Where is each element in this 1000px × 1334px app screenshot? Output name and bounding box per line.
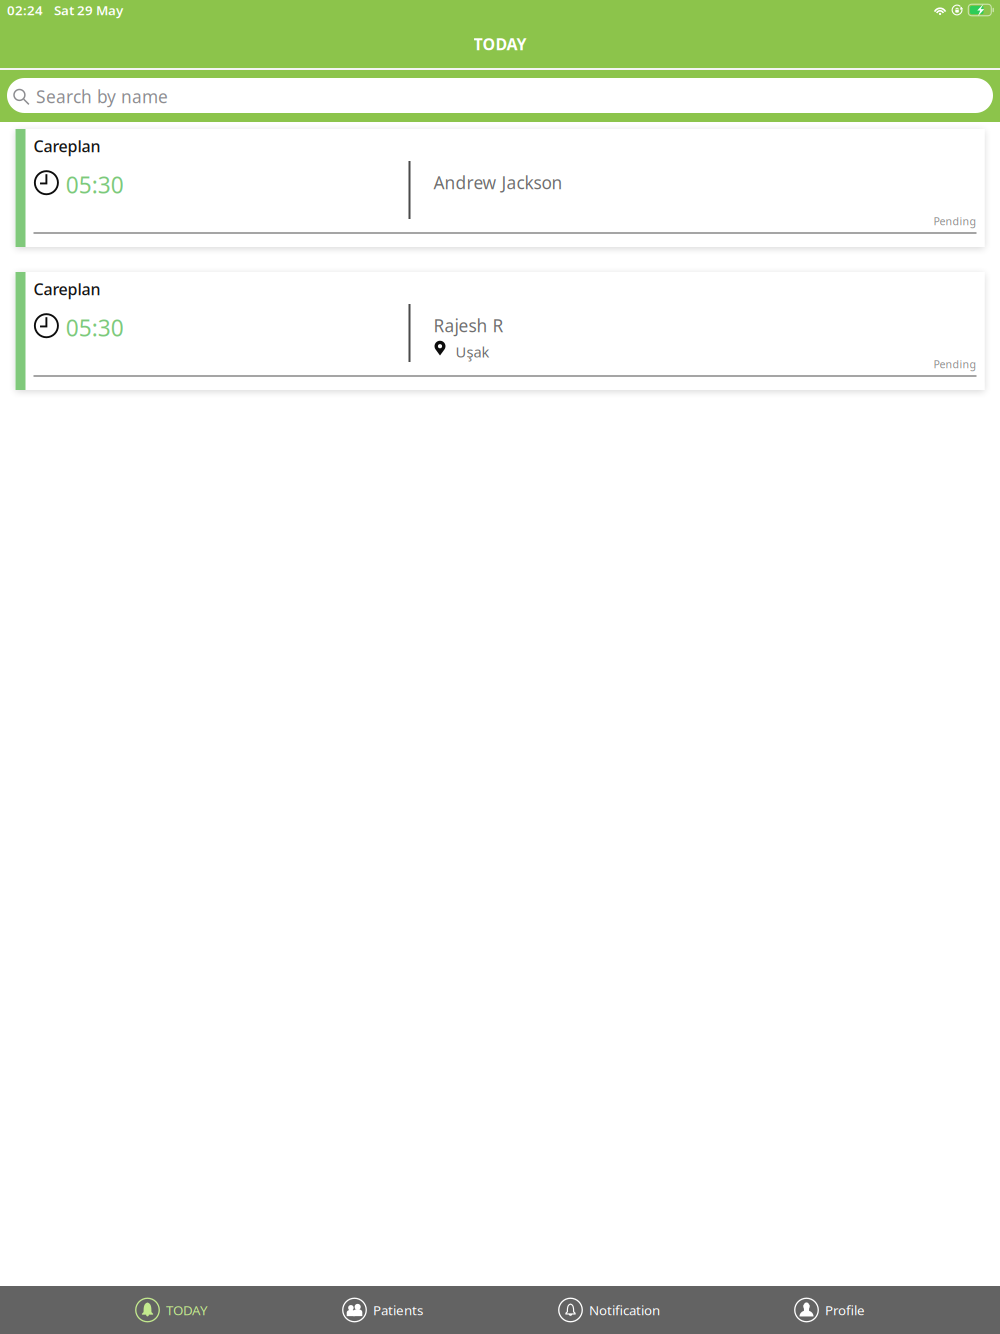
button[interactable]: Careplan <box>15 129 984 247</box>
staticText: Careplan <box>33 278 100 300</box>
staticText: Sat 29 May <box>54 1 123 19</box>
staticText: TODAY <box>166 1301 208 1319</box>
staticText: 05:30 <box>66 170 124 200</box>
button[interactable]: Careplan <box>15 272 984 390</box>
button[interactable]: Search by name <box>0 70 1000 122</box>
staticText: TODAY <box>473 33 526 55</box>
staticText: Patients <box>373 1301 423 1319</box>
staticText: Andrew Jackson <box>433 171 562 194</box>
staticText: Pending <box>933 357 976 371</box>
button[interactable]: Notification <box>500 1286 750 1334</box>
staticText: 05:30 <box>66 313 124 343</box>
staticText: Search by name <box>36 85 168 108</box>
staticText: Rajesh R <box>433 314 503 337</box>
button[interactable]: Patients <box>250 1286 500 1334</box>
staticText: 02:24 <box>7 1 43 19</box>
staticText: Uşak <box>455 342 489 361</box>
staticText: Pending <box>933 214 976 228</box>
staticText: Careplan <box>33 135 100 157</box>
button[interactable]: TODAY <box>0 1286 250 1334</box>
staticText: Profile <box>825 1301 865 1319</box>
button[interactable]: Profile <box>750 1286 1000 1334</box>
staticText: Notification <box>589 1301 660 1319</box>
